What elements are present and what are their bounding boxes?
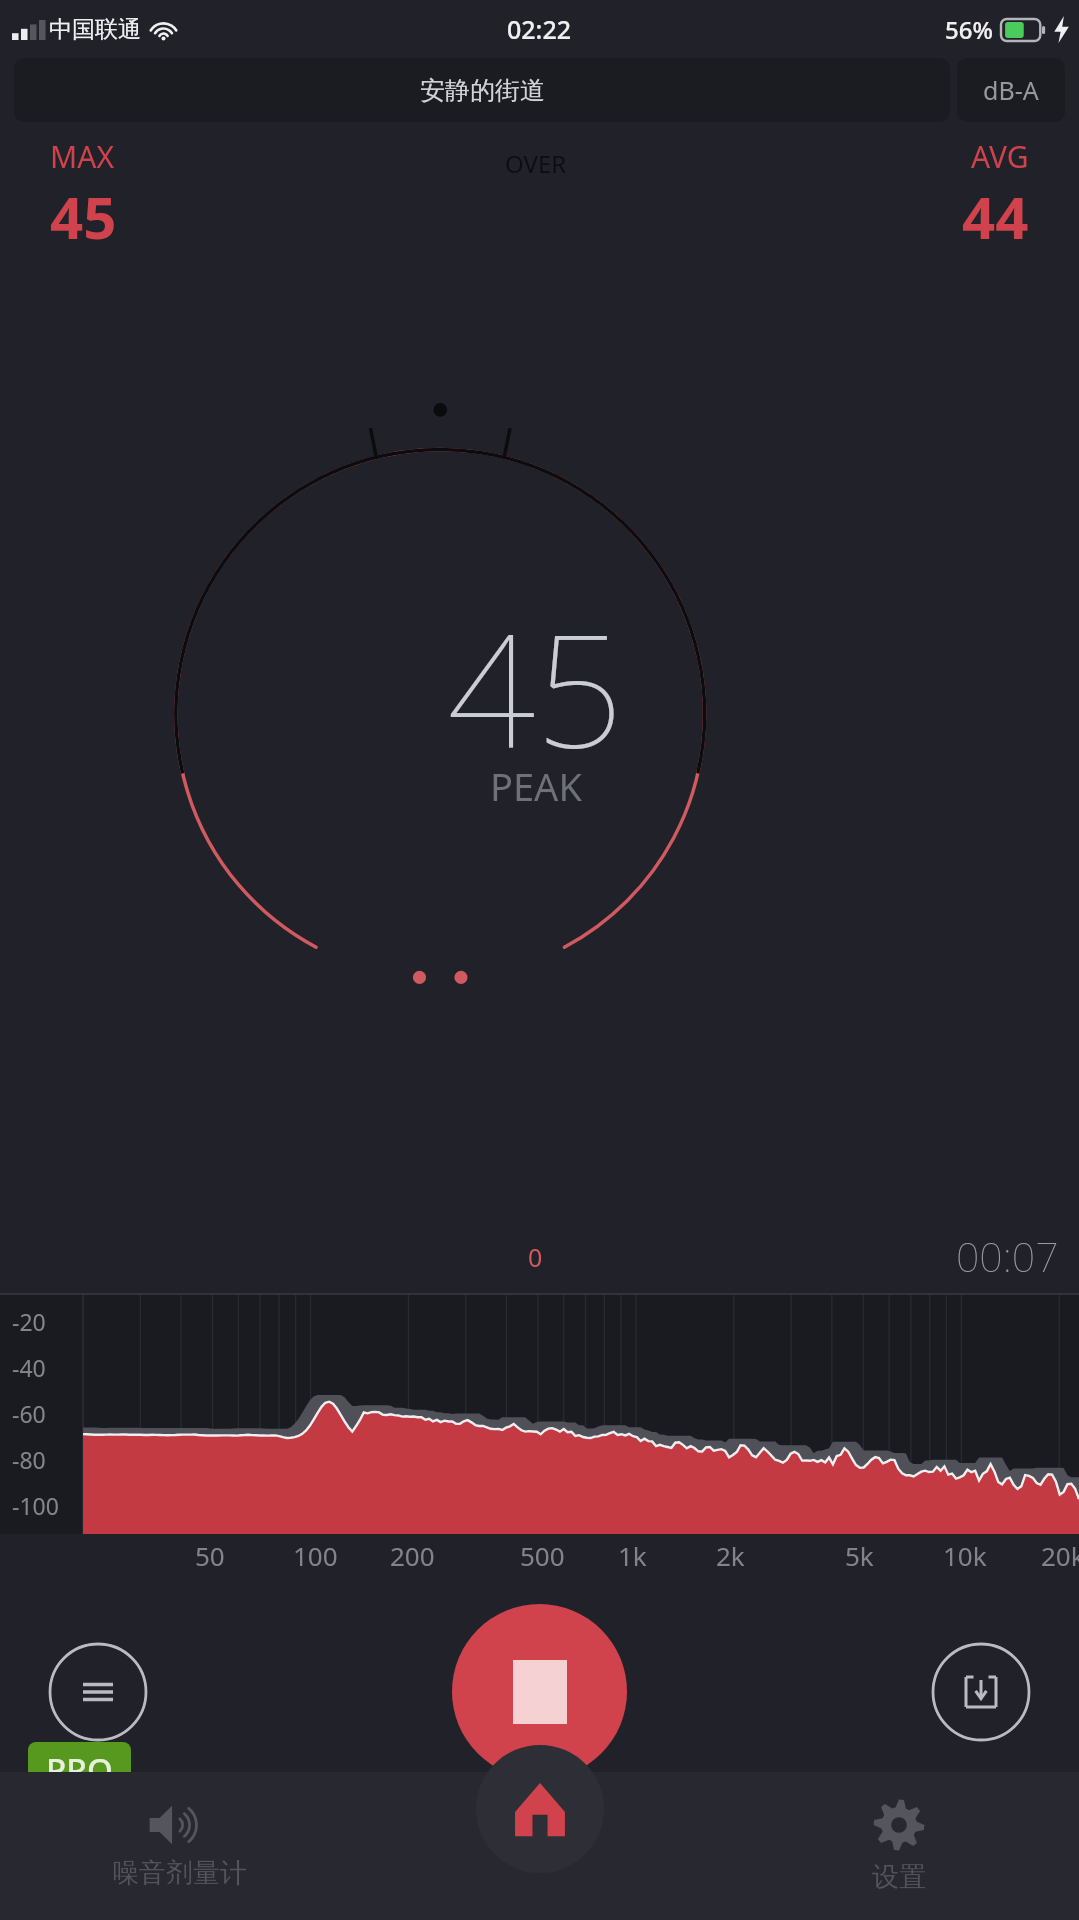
staticText: 设置 [872, 1860, 926, 1894]
staticText: 中国联通 [49, 15, 141, 44]
staticText: 安静的街道 [420, 75, 545, 106]
staticText: 2k [716, 1538, 745, 1573]
staticText: -20 [12, 1306, 46, 1337]
staticText: 56% [945, 13, 993, 46]
staticText: 00:07 [956, 1228, 1059, 1284]
staticText: 20k [1041, 1538, 1079, 1573]
staticText: 1k [618, 1538, 647, 1573]
staticText: AVG [971, 136, 1029, 177]
staticText: dB-A [983, 73, 1039, 107]
staticText: 50 [195, 1538, 225, 1573]
button[interactable]: dB-A [957, 58, 1065, 122]
staticText: 0 [528, 1240, 543, 1274]
button[interactable]: Home [476, 1745, 604, 1873]
staticText: OVER [505, 147, 567, 180]
staticText: 5k [845, 1538, 874, 1573]
staticText: PEAK [490, 760, 582, 812]
button[interactable]: Menu [48, 1642, 148, 1742]
staticText: MAX [50, 136, 114, 177]
button[interactable]: Save [931, 1642, 1031, 1742]
button[interactable]: 噪音剂量计 [0, 1772, 359, 1920]
staticText: 500 [520, 1538, 565, 1573]
staticText: 45 [447, 581, 624, 792]
staticText: 02:22 [507, 12, 572, 46]
staticText: -80 [12, 1444, 46, 1475]
staticText: -40 [12, 1352, 46, 1383]
staticText: -60 [12, 1398, 46, 1429]
button[interactable]: Stop recording [452, 1604, 627, 1779]
staticText: 10k [943, 1538, 987, 1573]
staticText: 200 [390, 1538, 435, 1573]
button[interactable]: 设置 [719, 1772, 1079, 1920]
staticText: 噪音剂量计 [112, 1856, 247, 1890]
button[interactable]: PRO [28, 1742, 131, 1797]
staticText: PRO [46, 1747, 113, 1792]
button[interactable]: 安静的街道 [14, 58, 950, 122]
staticText: 44 [962, 177, 1029, 256]
staticText: -100 [12, 1490, 59, 1521]
staticText: 45 [50, 177, 117, 256]
staticText: 100 [293, 1538, 338, 1573]
